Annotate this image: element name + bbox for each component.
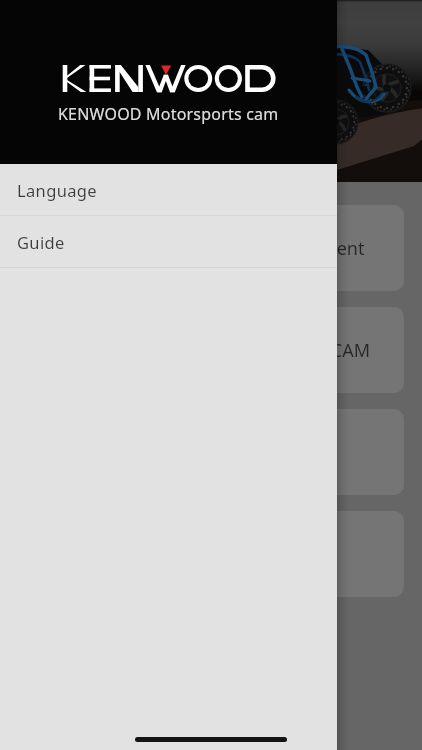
- button[interactable]: Application settings: [18, 511, 404, 597]
- staticText: Start KENWOOD MOTORSPORTS CAM: [53, 338, 370, 363]
- button[interactable]: Language: [0, 164, 337, 216]
- staticText: Guide: [17, 231, 65, 253]
- button[interactable]: Connect to the in-vehicle equipment: [18, 205, 404, 291]
- staticText: Connect to the in-vehicle equipment: [58, 236, 365, 261]
- staticText: KENWOOD Motorsports cam: [58, 103, 279, 125]
- staticText: Language: [17, 179, 97, 201]
- button[interactable]: Guide: [0, 216, 337, 268]
- button[interactable]: Start KENWOOD MOTORSPORTS CAM: [18, 307, 404, 393]
- button[interactable]: Playback recorded video: [18, 409, 404, 495]
